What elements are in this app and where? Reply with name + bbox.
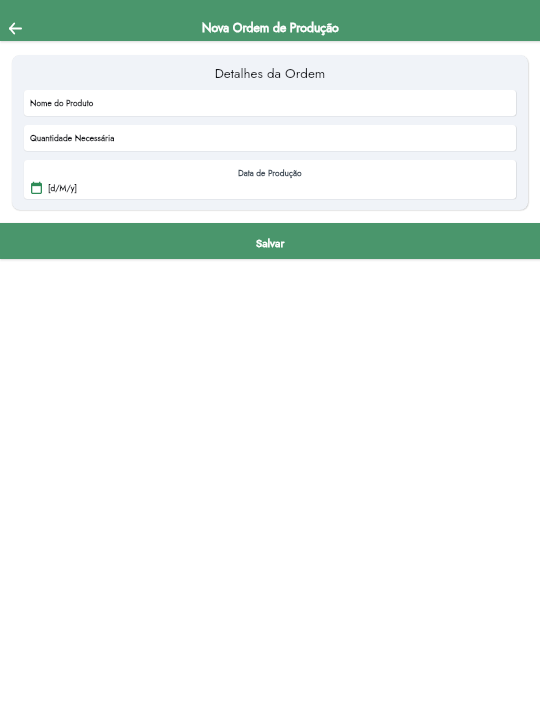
staticText: Data de Produção xyxy=(238,167,302,179)
button[interactable]: Nome do Produto xyxy=(24,90,516,116)
button[interactable]: Data de Produção xyxy=(24,160,516,199)
button[interactable]: Back xyxy=(2,15,28,41)
button[interactable]: Salvar xyxy=(0,223,540,259)
button[interactable]: Quantidade Necessária xyxy=(24,125,516,151)
staticText: [d/M/y] xyxy=(48,182,77,194)
staticText: Salvar xyxy=(256,235,285,251)
staticText: Nome do Produto xyxy=(30,97,94,109)
staticText: Detalhes da Ordem xyxy=(24,64,516,83)
staticText: Quantidade Necessária xyxy=(30,132,115,144)
staticText: Nova Ordem de Produção xyxy=(202,19,339,37)
